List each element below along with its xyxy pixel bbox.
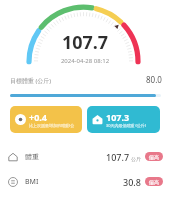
staticText: 107.7: [106, 151, 130, 163]
staticText: 比上次測量增加的體重(公斤): [29, 123, 79, 128]
staticText: 30天內最低體重 (公斤): [106, 123, 147, 128]
button[interactable]: +0.4: [10, 106, 82, 133]
staticText: 107.7: [0, 30, 170, 55]
staticText: 偏高: [149, 154, 159, 160]
staticText: 目標體重 (公斤): [10, 77, 52, 85]
button[interactable]: 體重: [0, 144, 170, 169]
button[interactable]: 107.3: [87, 106, 160, 133]
staticText: 體重: [25, 152, 39, 161]
staticText: 80.0: [146, 74, 162, 85]
staticText: +0.4: [29, 111, 47, 123]
staticText: 30.8: [123, 176, 141, 188]
staticText: 2024-04-28 08:12: [0, 57, 170, 65]
staticText: 107.3: [106, 111, 130, 123]
button[interactable]: BMI: [0, 169, 170, 194]
staticText: 公斤: [131, 156, 141, 162]
staticText: 偏高: [149, 179, 159, 185]
staticText: BMI: [25, 177, 39, 187]
